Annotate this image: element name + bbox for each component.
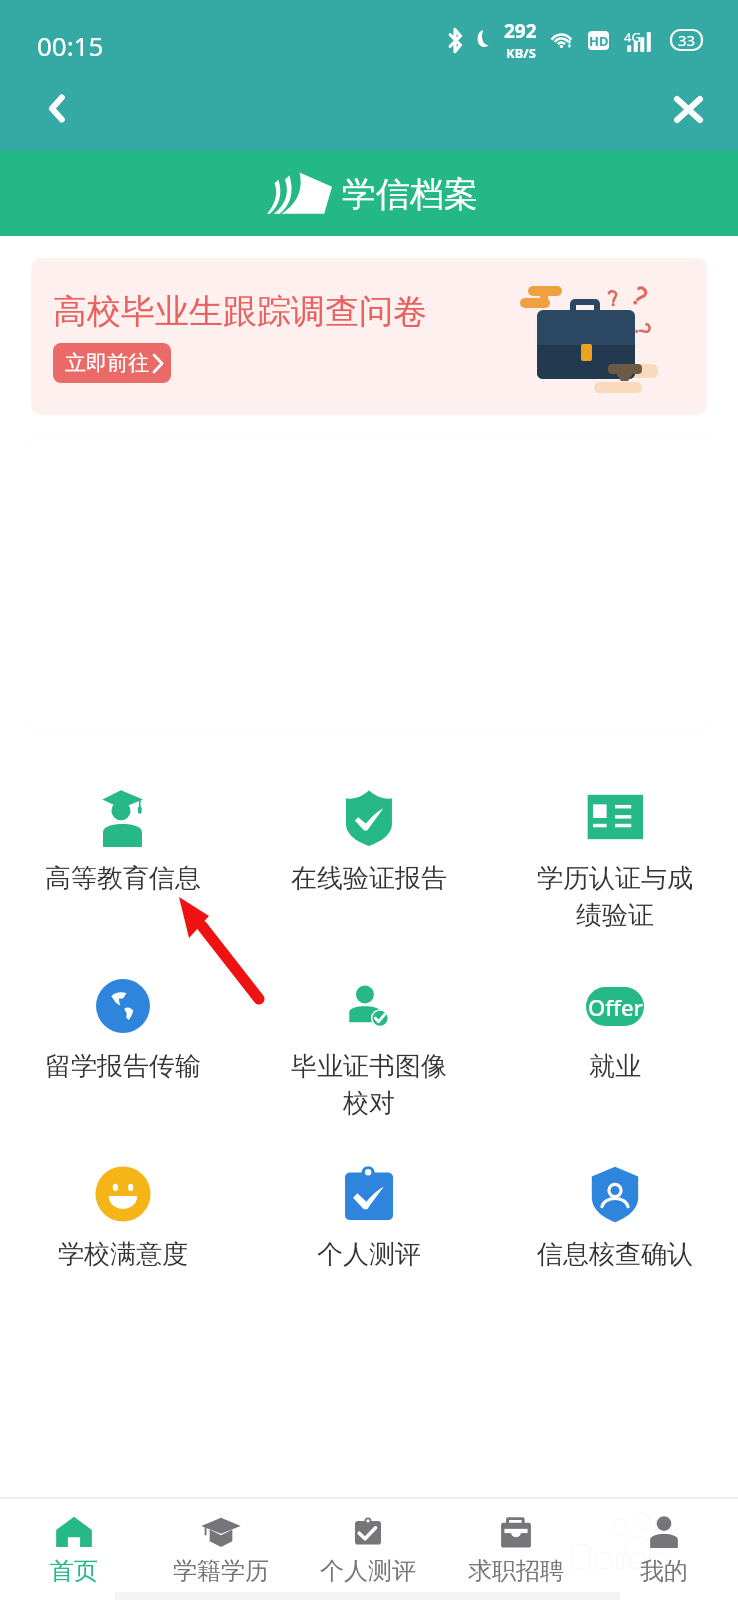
button[interactable]: 我的 [590,1499,738,1600]
button[interactable]: 个人测评 [246,1165,492,1353]
staticText: 个人测评 [320,1556,416,1586]
staticText: 个人测评 [317,1238,421,1271]
button[interactable]: Close [653,74,723,144]
staticText: 高等教育信息 [45,862,201,895]
staticText: 高校毕业生跟踪调查问卷 [53,290,427,333]
button[interactable]: 学历认证与成 绩验证 [492,789,738,977]
button[interactable]: Back [22,73,92,143]
staticText: 学信档案 [342,173,478,216]
staticText: 立即前往 [65,350,149,376]
button[interactable]: 求职招聘 [442,1499,590,1600]
button[interactable]: 个人测评 [294,1499,442,1600]
staticText: 留学报告传输 [45,1050,201,1083]
staticText: 毕业证书图像 校对 [291,1050,447,1119]
staticText: 学籍学历 [173,1556,269,1586]
button[interactable]: 毕业证书图像 校对 [246,977,492,1165]
button[interactable]: 学校满意度 [0,1165,246,1353]
staticText: Offer [588,992,643,1022]
staticText: HD [589,32,609,50]
staticText: 33 [678,30,696,50]
staticText: 学历认证与成 绩验证 [537,862,693,931]
staticText: KB/S [506,44,536,62]
button[interactable]: 在线验证报告 [246,789,492,977]
button[interactable]: 首页 [0,1499,147,1600]
button[interactable]: 立即前往 [53,343,171,383]
button[interactable]: 留学报告传输 [0,977,246,1165]
button[interactable]: Offer [492,977,738,1165]
button[interactable]: 学籍学历 [147,1499,294,1600]
staticText: 我的 [640,1556,688,1586]
staticText: 学校满意度 [58,1238,188,1271]
button[interactable]: 信息核查确认 [492,1165,738,1353]
button[interactable]: 高等教育信息 [0,789,246,977]
staticText: 首页 [50,1556,98,1586]
button[interactable]: 高校毕业生跟踪调查问卷 [31,258,707,415]
staticText: 292 [504,18,537,44]
staticText: 求职招聘 [468,1556,564,1586]
staticText: 4G [624,28,641,46]
staticText: 在线验证报告 [291,862,447,895]
staticText: 00:15 [37,28,104,63]
staticText: 信息核查确认 [537,1238,693,1271]
staticText: 就业 [589,1050,641,1083]
